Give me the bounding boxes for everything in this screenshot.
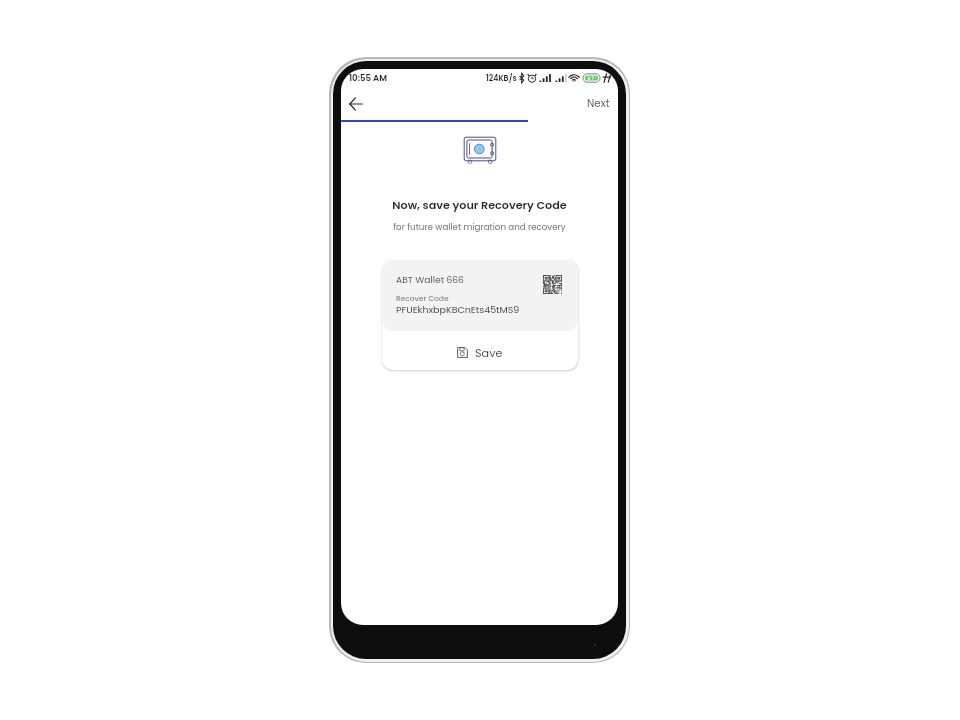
staticText: Save (475, 345, 503, 361)
staticText: Recover Code (396, 293, 449, 303)
staticText: 124KB/s (486, 73, 517, 84)
staticText: PFUEkhxbpKBCnEts45tMS9 (396, 303, 520, 316)
staticText: Next (587, 96, 610, 111)
staticText: 10:55 AM (349, 72, 387, 84)
staticText: Now, save your Recovery Code (341, 197, 618, 213)
button[interactable]: Save (382, 331, 578, 370)
staticText: ABT Wallet 666 (396, 273, 464, 286)
button[interactable]: ABT Wallet 666 (382, 260, 578, 331)
button[interactable]: Next (577, 90, 618, 117)
staticText: for future wallet migration and recovery (341, 221, 618, 233)
button[interactable]: Back (343, 91, 369, 117)
